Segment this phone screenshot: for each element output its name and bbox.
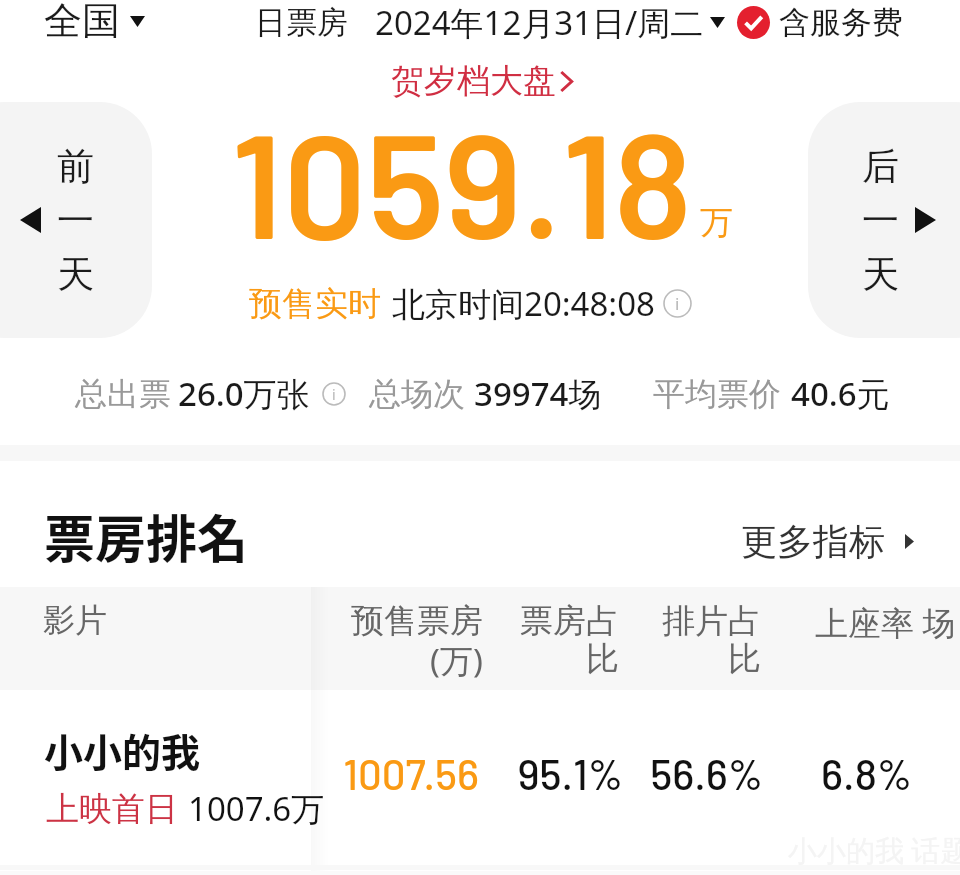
staticText: 比 xyxy=(586,638,619,680)
staticText: 1007.6万 xyxy=(188,786,325,831)
staticText: 前 xyxy=(57,143,94,190)
staticText: 影片 xyxy=(43,600,107,640)
staticText: 1007.56 xyxy=(279,748,479,798)
button[interactable] xyxy=(0,690,960,825)
staticText: 票房占 xyxy=(520,600,619,642)
button[interactable]: 含服务费 xyxy=(737,3,903,42)
staticText: 贺岁档大盘 xyxy=(391,60,556,102)
button[interactable]: 贺岁档大盘 xyxy=(391,60,573,102)
staticText: 北京时间20:48:08 xyxy=(392,281,655,326)
staticText: i xyxy=(332,385,336,404)
staticText: 95.1% xyxy=(423,748,623,798)
staticText: 一 xyxy=(57,197,94,244)
staticText: 预售票房 xyxy=(351,600,483,642)
button[interactable]: 更多指标 xyxy=(741,519,914,564)
staticText: 后 xyxy=(862,143,899,190)
staticText: 日票房 xyxy=(255,3,348,42)
staticText: 上映首日 xyxy=(46,788,178,830)
button[interactable] xyxy=(808,102,960,338)
staticText: 小小的我 xyxy=(44,722,201,778)
staticText: 平均票价 xyxy=(653,374,781,414)
staticText: 总出票 xyxy=(75,374,171,414)
staticText: 1059.18 xyxy=(231,92,693,268)
staticText: 天 xyxy=(57,251,94,298)
staticText: 6.8% xyxy=(712,748,912,798)
staticText: 票房排名 xyxy=(44,499,249,573)
other: Next day xyxy=(915,207,936,233)
staticText: 预售实时 xyxy=(249,283,381,325)
staticText: 56.6% xyxy=(563,748,763,798)
staticText: 小小的我 话题 xyxy=(788,830,960,870)
staticText: 2024年12月31日/周二 xyxy=(375,0,704,45)
staticText: i xyxy=(675,292,680,315)
staticText: 排片占 xyxy=(662,600,761,642)
button[interactable] xyxy=(0,102,152,338)
staticText: 39974场 xyxy=(474,371,602,416)
staticText: 天 xyxy=(862,251,899,298)
staticText: 总场次 xyxy=(369,374,465,414)
staticText: 含服务费 xyxy=(779,3,903,42)
staticText: 比 xyxy=(728,638,761,680)
staticText: 万 xyxy=(700,202,733,244)
staticText: (万) xyxy=(430,638,483,683)
staticText: 一 xyxy=(862,197,899,244)
staticText: 更多指标 xyxy=(741,519,885,564)
other: Previous day xyxy=(20,207,41,233)
staticText: 全国 xyxy=(44,0,120,45)
staticText: 26.0万张 xyxy=(178,371,310,416)
button[interactable]: 全国 xyxy=(44,0,145,45)
button[interactable]: 2024年12月31日/周二 xyxy=(375,0,725,45)
staticText: 40.6元 xyxy=(791,371,890,416)
staticText: 上座率 场 xyxy=(815,600,956,645)
